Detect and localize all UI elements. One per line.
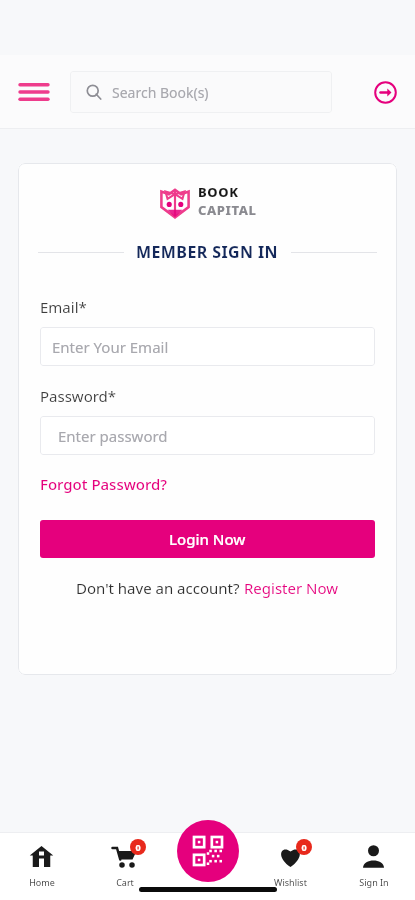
button[interactable]: Menu xyxy=(12,70,56,114)
staticText: 0 xyxy=(301,841,307,853)
button[interactable]: Scan QR code xyxy=(177,820,239,882)
button[interactable]: Login Now xyxy=(40,520,375,558)
staticText: MEMBER SIGN IN xyxy=(136,241,279,263)
button[interactable]: Book Capital logo xyxy=(18,183,397,219)
staticText: CAPITAL xyxy=(198,201,257,219)
staticText: BOOK xyxy=(198,183,239,201)
staticText: Password* xyxy=(40,386,117,406)
button[interactable]: 0 xyxy=(83,832,166,888)
button[interactable]: 0 xyxy=(249,832,332,888)
staticText: Email* xyxy=(40,297,87,317)
staticText: Search Book(s) xyxy=(112,83,209,102)
staticText: Enter Your Email xyxy=(52,337,169,357)
button[interactable]: Home xyxy=(0,832,83,888)
staticText: Wishlist xyxy=(274,876,307,888)
staticText: 0 xyxy=(135,841,141,853)
staticText: Sign In xyxy=(359,876,389,888)
staticText: Home xyxy=(29,876,55,888)
staticText: Don't have an account? xyxy=(76,578,244,598)
button[interactable]: Forgot Password? xyxy=(40,474,168,494)
staticText: Register Now xyxy=(244,578,339,598)
staticText: Cart xyxy=(116,876,134,888)
button[interactable]: Sign In xyxy=(332,832,415,888)
staticText: Forgot Password? xyxy=(40,474,168,494)
button[interactable]: Search Book(s) xyxy=(70,71,332,113)
button[interactable]: Enter Your Email xyxy=(40,327,375,366)
button[interactable]: Register Now xyxy=(244,578,339,598)
button[interactable]: Enter password xyxy=(40,416,375,455)
button[interactable]: Sign in xyxy=(363,70,407,114)
staticText: Login Now xyxy=(169,529,246,549)
staticText: Enter password xyxy=(58,426,168,446)
